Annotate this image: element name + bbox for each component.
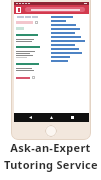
button[interactable]: Address bar — [25, 7, 85, 12]
button[interactable]: Home button — [45, 125, 57, 137]
button[interactable]: Checkbox — [32, 76, 35, 79]
button[interactable]: Checkbox — [35, 21, 38, 24]
button[interactable]: Site logo — [14, 5, 89, 14]
staticText: Tutoring Service — [4, 157, 98, 172]
button[interactable]: Back — [26, 113, 35, 122]
other: Site logo — [16, 7, 21, 13]
staticText: Ask-an-Expert — [10, 140, 91, 155]
button[interactable]: Recents — [68, 113, 77, 122]
button[interactable]: Home — [47, 113, 56, 122]
